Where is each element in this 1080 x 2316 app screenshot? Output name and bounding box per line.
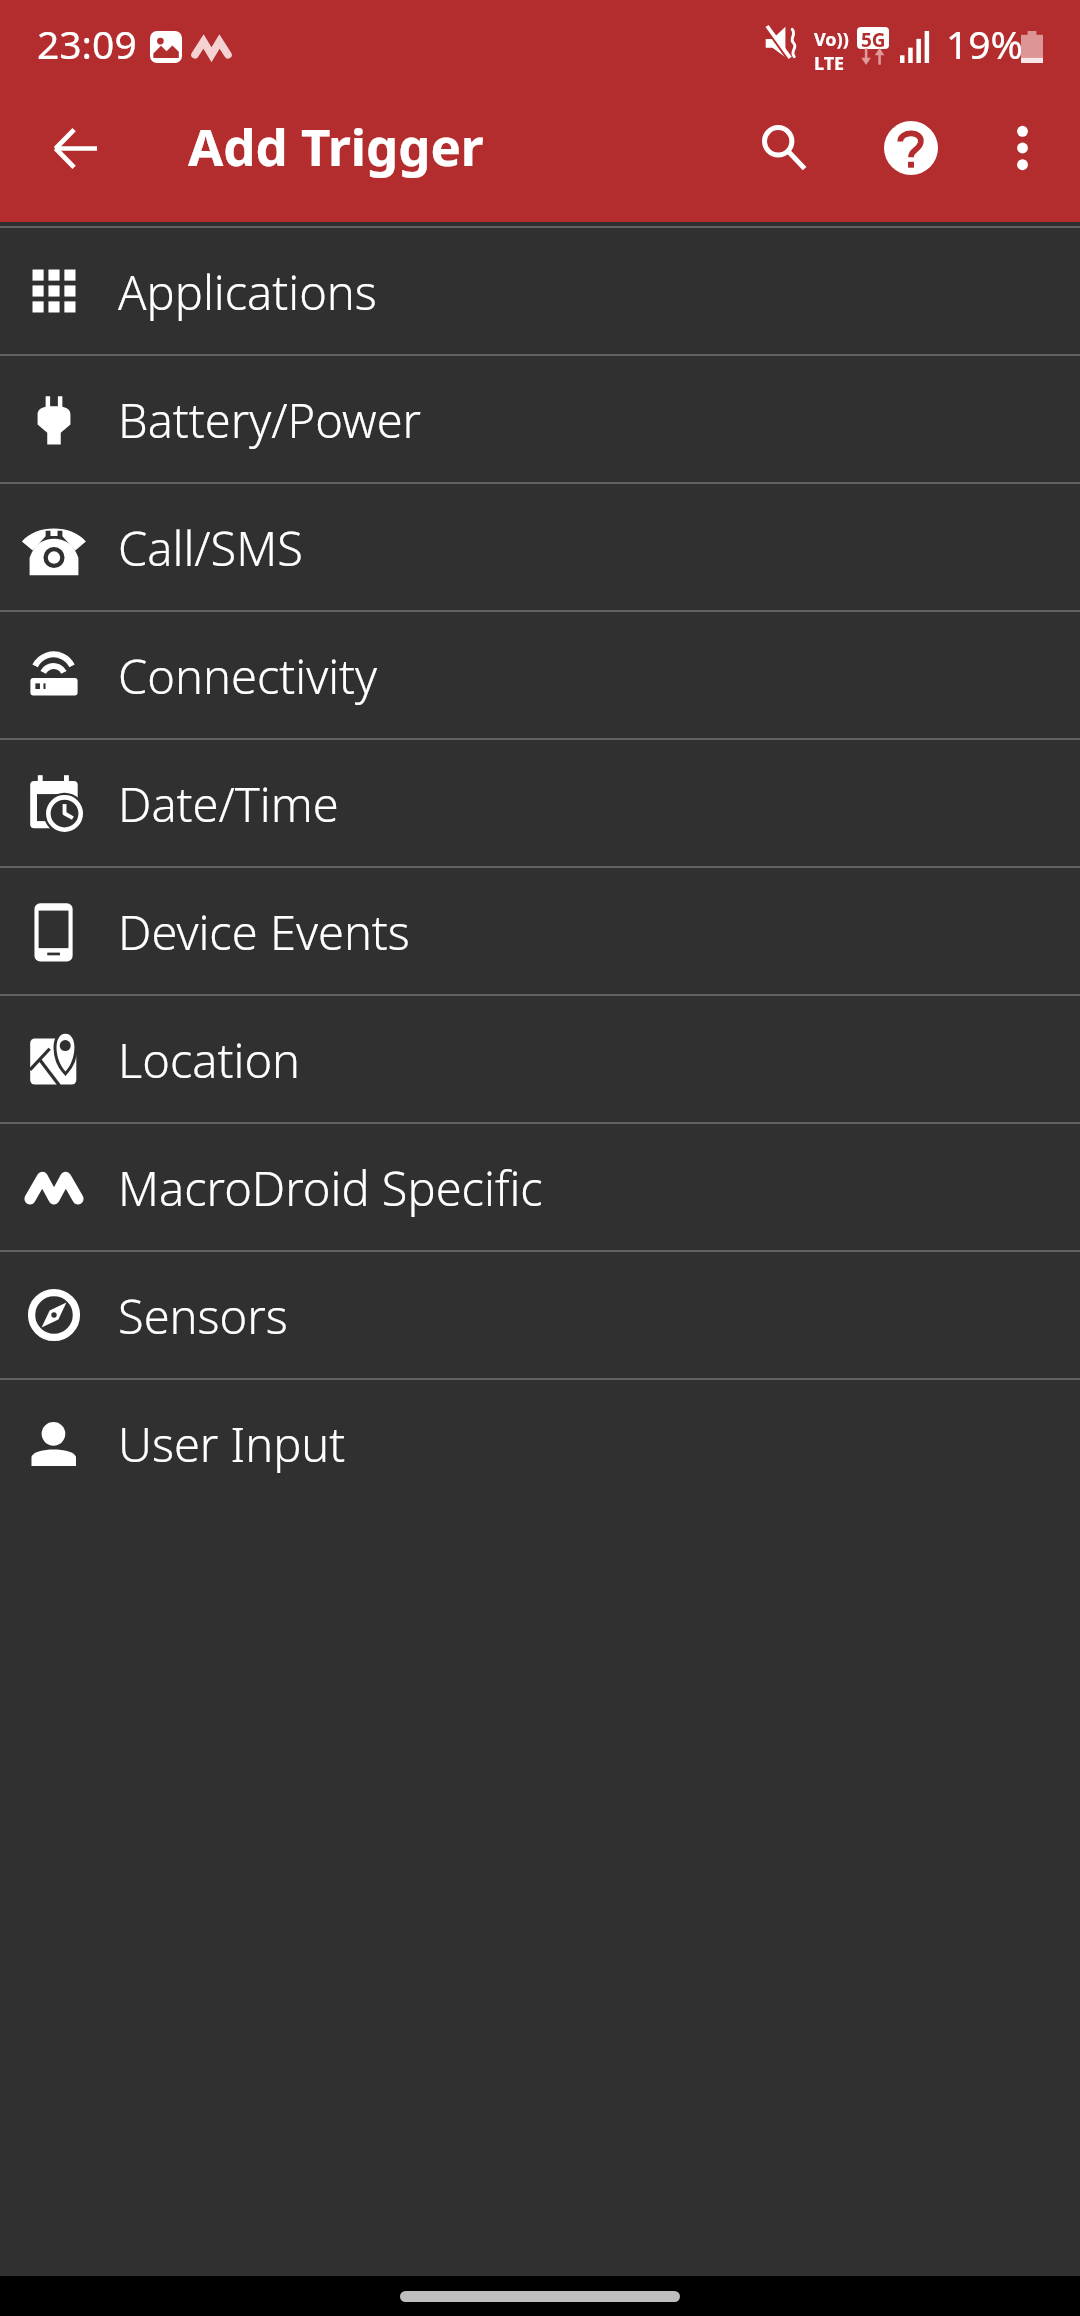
staticText: 23:09 — [37, 17, 137, 70]
button[interactable]: Location — [0, 996, 1080, 1122]
button[interactable]: Connectivity — [0, 612, 1080, 738]
staticText: Date/Time — [118, 772, 339, 836]
staticText: Add Trigger — [188, 111, 484, 180]
staticText: 19% — [946, 17, 1024, 70]
button[interactable]: Call/SMS — [0, 484, 1080, 610]
button[interactable]: Sensors — [0, 1252, 1080, 1378]
staticText: MacroDroid Specific — [118, 1156, 543, 1220]
staticText: Connectivity — [118, 644, 378, 708]
staticText: Applications — [118, 260, 377, 324]
staticText: Sensors — [118, 1284, 288, 1348]
button[interactable]: MacroDroid Specific — [0, 1124, 1080, 1250]
staticText: Location — [118, 1028, 301, 1092]
staticText: LTE — [814, 51, 845, 76]
staticText: User Input — [118, 1412, 346, 1476]
staticText: 5G — [861, 27, 886, 49]
staticText: Battery/Power — [118, 388, 422, 452]
button[interactable]: Search — [735, 100, 831, 196]
button[interactable]: Device Events — [0, 868, 1080, 994]
button[interactable]: User Input — [0, 1380, 1080, 1506]
button[interactable]: Navigate up — [27, 100, 123, 196]
staticText: Call/SMS — [118, 516, 303, 580]
button[interactable]: Battery/Power — [0, 356, 1080, 482]
staticText: Device Events — [118, 900, 410, 964]
button[interactable]: Applications — [0, 228, 1080, 354]
staticText: Vo)) — [814, 27, 849, 52]
button[interactable]: Date/Time — [0, 740, 1080, 866]
button[interactable]: Help — [863, 100, 959, 196]
button[interactable]: More options — [974, 100, 1070, 196]
